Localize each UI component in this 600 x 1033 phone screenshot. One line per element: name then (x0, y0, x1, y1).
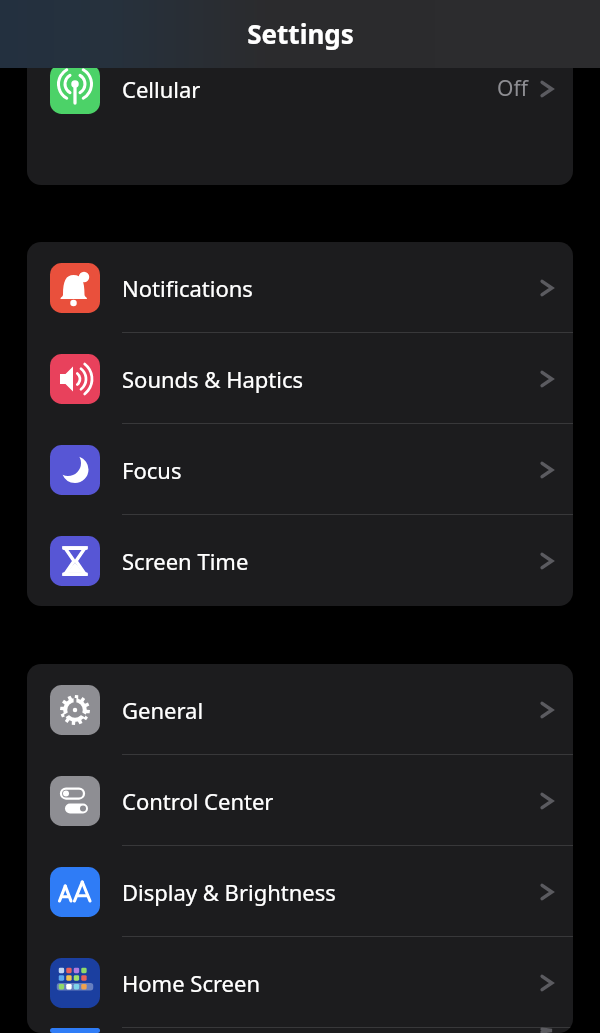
button[interactable]: Home Screen (27, 937, 573, 1028)
button[interactable]: Display & Brightness (27, 846, 573, 937)
staticText: Sounds & Haptics (122, 364, 304, 394)
button[interactable]: Accessibility (27, 1028, 573, 1033)
button[interactable]: Wi-Fi (27, 0, 573, 43)
staticText: Off (497, 74, 528, 103)
button[interactable]: General (27, 664, 573, 755)
staticText: Focus (122, 455, 182, 485)
staticText: Home Screen (122, 968, 261, 998)
staticText: Cellular (122, 74, 201, 104)
staticText: Display & Brightness (122, 877, 336, 907)
button[interactable]: Control Center (27, 755, 573, 846)
staticText: Control Center (122, 786, 274, 816)
button[interactable]: Notifications (27, 242, 573, 333)
button[interactable]: Sounds & Haptics (27, 333, 573, 424)
button[interactable]: Cellular (27, 43, 573, 134)
button[interactable]: Focus (27, 424, 573, 515)
staticText: Notifications (122, 273, 253, 303)
staticText: General (122, 695, 204, 725)
staticText: Screen Time (122, 546, 249, 576)
button[interactable]: Screen Time (27, 515, 573, 606)
staticText: Settings (247, 16, 354, 51)
